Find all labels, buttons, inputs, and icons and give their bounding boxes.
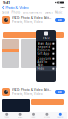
staticText: GET [57,90,62,94]
staticText: Arcade [44,116,50,118]
button[interactable]: GET [55,90,65,94]
button[interactable]: Report a Problem [36,46,56,51]
staticText: VSCO [42,36,49,40]
staticText: Hide [38,67,45,70]
staticText: Share App [38,42,52,45]
staticText: Entertainment [23,11,42,14]
button[interactable]: Arcade [40,113,54,118]
button[interactable]: Music [55,11,62,14]
staticText: VSCO: Photo & Video Editor [12,16,51,20]
button[interactable]: Search [54,113,67,118]
button[interactable]: Games [13,113,27,118]
button[interactable]: Apps [27,113,40,118]
staticText: Games [44,11,52,14]
button[interactable]: Games [44,11,52,14]
button[interactable]: Social [2,11,9,14]
button[interactable]: Photo & Video [2,5,28,10]
staticText: Copy Link [38,57,51,60]
button[interactable]: Share App [36,41,56,46]
staticText: GET [57,18,62,22]
button[interactable]: More [60,5,65,10]
staticText: Report a Problem [38,45,50,52]
staticText: Social [2,11,9,14]
staticText: Add to Wish [38,60,48,67]
staticText: Music [55,11,62,14]
button[interactable]: Copy Link [36,56,56,61]
staticText: Presets, Filters, Video [12,20,43,24]
staticText: Games [18,116,23,118]
button[interactable]: Photo [11,11,20,14]
staticText: 9:41 [3,0,10,5]
button[interactable]: GET [55,18,65,22]
staticText: Search [57,116,63,118]
staticText: VSCO: Photo & Video Editor [12,88,51,92]
staticText: Photo & Video [5,5,28,10]
staticText: Presets, Filters, Video [12,92,43,96]
staticText: Gift App [38,52,50,55]
button[interactable]: Hide [36,66,56,71]
button[interactable]: Gift App [36,51,56,56]
button[interactable]: Entertainment [23,11,42,14]
staticText: Today [4,116,9,118]
button[interactable]: Today [0,113,13,118]
staticText: Apps [31,116,35,118]
staticText: Photo [11,11,20,14]
button[interactable]: Add to Wish [36,61,56,66]
